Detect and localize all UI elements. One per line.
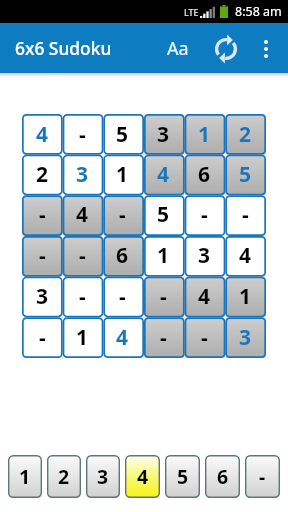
button[interactable]: More options bbox=[250, 24, 282, 73]
staticText: 6 bbox=[116, 241, 129, 270]
button[interactable]: - bbox=[22, 235, 62, 276]
button[interactable]: 5 bbox=[102, 114, 143, 154]
staticText: - bbox=[39, 200, 46, 229]
button[interactable]: - bbox=[184, 317, 225, 358]
staticText: 1 bbox=[157, 241, 170, 270]
button[interactable]: 1 bbox=[143, 235, 184, 276]
staticText: 5 bbox=[239, 160, 252, 189]
button[interactable]: 2 bbox=[22, 154, 62, 194]
button[interactable]: 4 bbox=[143, 154, 184, 194]
staticText: 6x6 Sudoku bbox=[15, 36, 112, 60]
button[interactable]: 6 bbox=[184, 154, 225, 194]
button[interactable]: 3 bbox=[86, 455, 120, 498]
staticText: - bbox=[160, 323, 167, 352]
button[interactable]: 2 bbox=[47, 455, 81, 498]
button[interactable]: - bbox=[143, 276, 184, 317]
staticText: 4 bbox=[76, 200, 89, 229]
staticText: 2 bbox=[239, 120, 252, 149]
staticText: - bbox=[39, 241, 46, 270]
button[interactable]: 4 bbox=[125, 455, 160, 498]
button[interactable]: Aa bbox=[154, 24, 202, 73]
button[interactable]: 3 bbox=[22, 276, 62, 317]
staticText: 5 bbox=[177, 463, 189, 490]
button[interactable]: 5 bbox=[225, 154, 266, 194]
button[interactable]: 1 bbox=[225, 276, 266, 317]
button[interactable]: 3 bbox=[184, 235, 225, 276]
staticText: - bbox=[79, 282, 86, 311]
staticText: - bbox=[119, 282, 126, 311]
staticText: 3 bbox=[36, 282, 49, 311]
staticText: - bbox=[201, 200, 208, 229]
button[interactable]: - bbox=[245, 455, 280, 498]
button[interactable]: 5 bbox=[165, 455, 200, 498]
staticText: - bbox=[259, 463, 266, 490]
button[interactable]: 4 bbox=[225, 235, 266, 276]
staticText: 6 bbox=[217, 463, 229, 490]
staticText: 4 bbox=[157, 160, 170, 189]
staticText: 3 bbox=[157, 120, 170, 149]
staticText: 5 bbox=[116, 120, 129, 149]
staticText: 1 bbox=[116, 160, 129, 189]
staticText: 5 bbox=[157, 200, 170, 229]
staticText: 3 bbox=[239, 323, 252, 352]
button[interactable]: 1 bbox=[8, 455, 42, 498]
button[interactable]: 4 bbox=[62, 194, 102, 235]
staticText: 2 bbox=[36, 160, 49, 189]
button[interactable]: - bbox=[22, 194, 62, 235]
staticText: - bbox=[39, 323, 46, 352]
button[interactable]: - bbox=[62, 235, 102, 276]
staticText: 4 bbox=[239, 241, 252, 270]
button[interactable]: 4 bbox=[22, 114, 62, 154]
staticText: - bbox=[242, 200, 249, 229]
staticText: LTE bbox=[184, 6, 199, 18]
button[interactable]: 6 bbox=[205, 455, 240, 498]
button[interactable]: Refresh bbox=[202, 24, 250, 73]
button[interactable]: - bbox=[143, 317, 184, 358]
staticText: - bbox=[79, 120, 86, 149]
button[interactable]: 1 bbox=[102, 154, 143, 194]
button[interactable]: 3 bbox=[62, 154, 102, 194]
button[interactable]: - bbox=[102, 276, 143, 317]
staticText: 2 bbox=[58, 463, 70, 490]
staticText: 3 bbox=[76, 160, 89, 189]
button[interactable]: - bbox=[184, 194, 225, 235]
staticText: 3 bbox=[198, 241, 211, 270]
button[interactable]: - bbox=[62, 114, 102, 154]
staticText: Aa bbox=[167, 36, 189, 61]
staticText: 1 bbox=[239, 282, 252, 311]
staticText: 4 bbox=[116, 323, 129, 352]
button[interactable]: 4 bbox=[184, 276, 225, 317]
staticText: 4 bbox=[137, 463, 149, 490]
staticText: 3 bbox=[97, 463, 109, 490]
button[interactable]: 2 bbox=[225, 114, 266, 154]
staticText: 8:58 am bbox=[235, 3, 282, 20]
button[interactable]: 1 bbox=[62, 317, 102, 358]
button[interactable]: - bbox=[62, 276, 102, 317]
button[interactable]: - bbox=[102, 194, 143, 235]
button[interactable]: 4 bbox=[102, 317, 143, 358]
staticText: - bbox=[201, 323, 208, 352]
staticText: - bbox=[160, 282, 167, 311]
button[interactable]: 3 bbox=[225, 317, 266, 358]
button[interactable]: 1 bbox=[184, 114, 225, 154]
button[interactable]: 5 bbox=[143, 194, 184, 235]
staticText: 4 bbox=[198, 282, 211, 311]
staticText: 1 bbox=[19, 463, 31, 490]
staticText: 1 bbox=[76, 323, 89, 352]
button[interactable]: - bbox=[22, 317, 62, 358]
button[interactable]: 6 bbox=[102, 235, 143, 276]
staticText: 4 bbox=[36, 120, 49, 149]
staticText: 6 bbox=[198, 160, 211, 189]
staticText: 1 bbox=[198, 120, 211, 149]
staticText: - bbox=[79, 241, 86, 270]
button[interactable]: 3 bbox=[143, 114, 184, 154]
button[interactable]: - bbox=[225, 194, 266, 235]
staticText: - bbox=[119, 200, 126, 229]
